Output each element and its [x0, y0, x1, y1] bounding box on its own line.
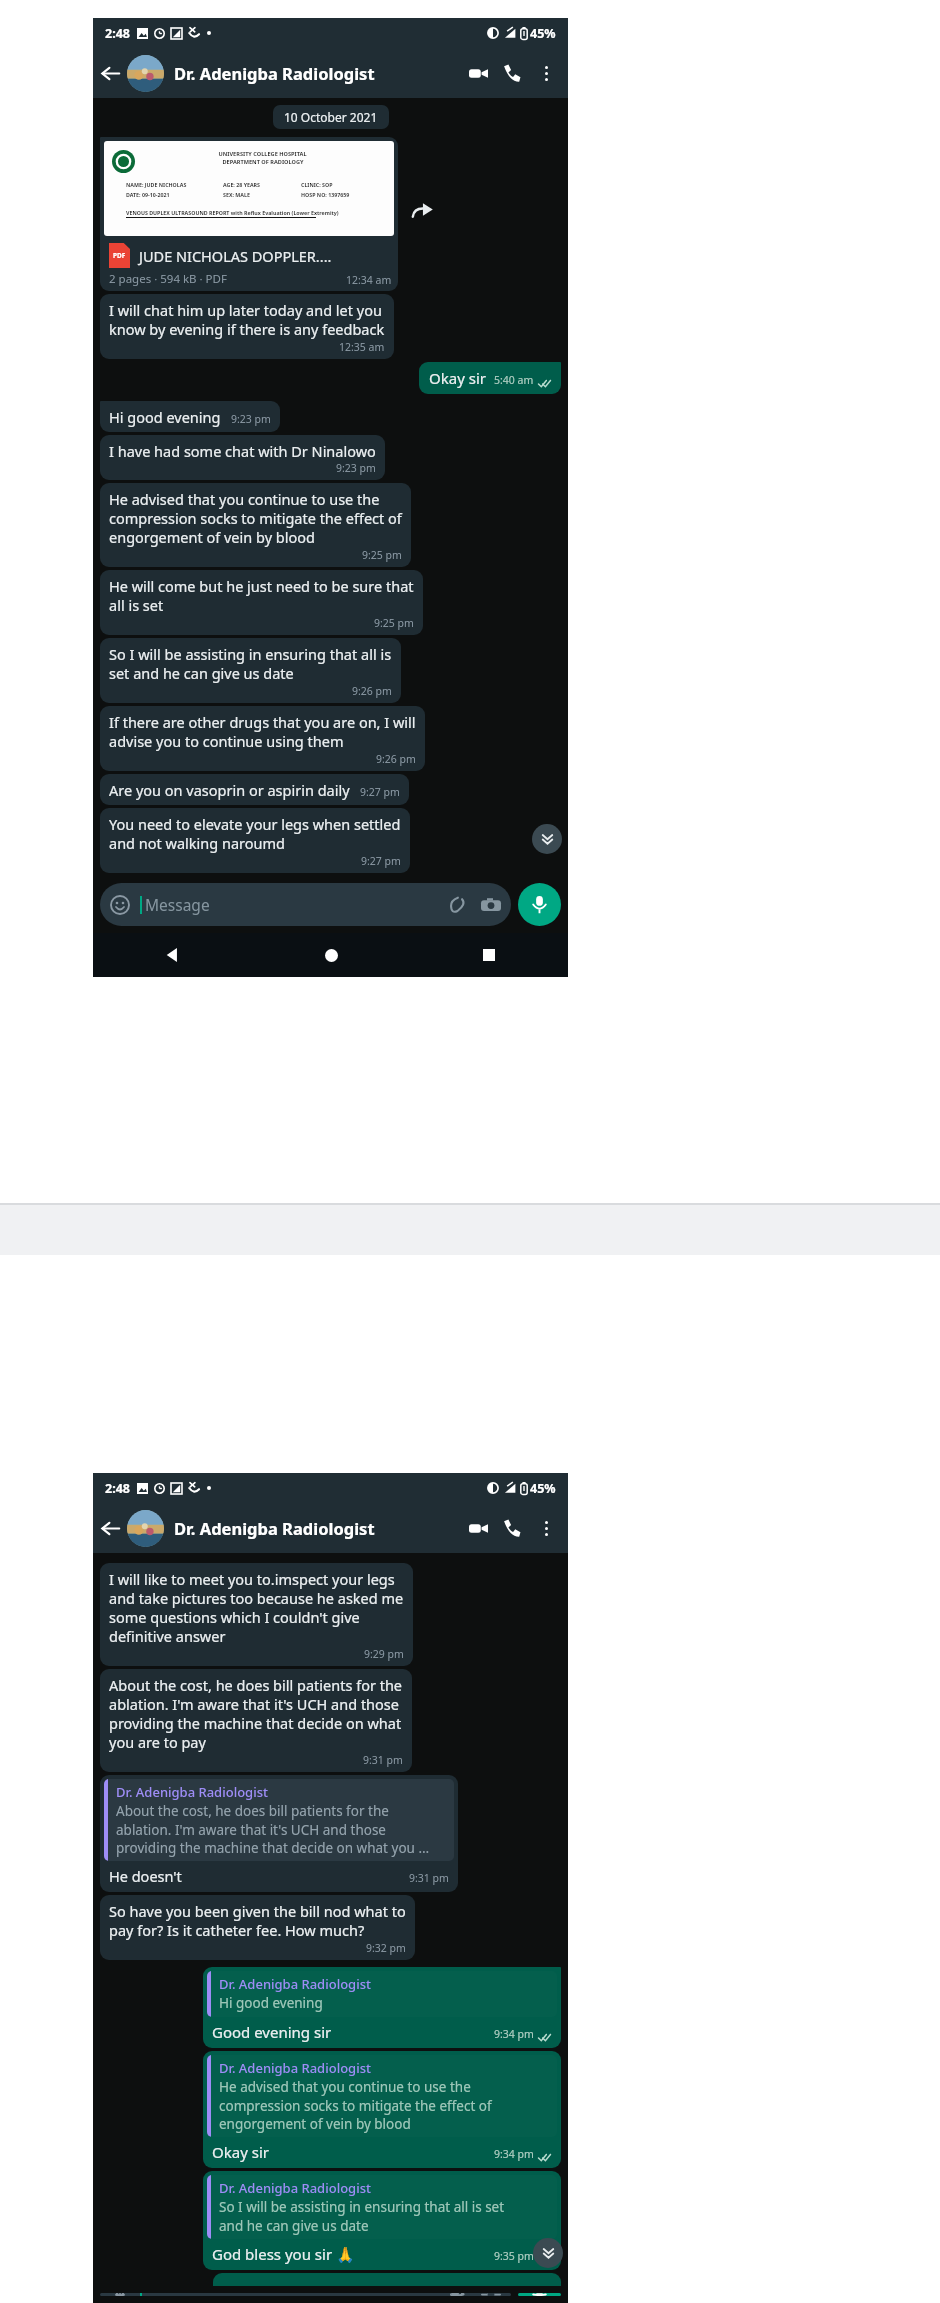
other: Camera	[481, 2293, 501, 2296]
button[interactable]: Dr. Adenigba Radiologist	[203, 2171, 561, 2270]
staticText: CLINIC: SOP	[301, 181, 333, 188]
staticText: 9:23 pm	[336, 461, 376, 475]
staticText: DEPARTMENT OF RADIOLOGY	[222, 158, 304, 166]
button[interactable]: You need to elevate your legs when settl…	[100, 808, 410, 873]
staticText: SEX: MALE	[223, 191, 250, 198]
staticText: He will come but he just need to be sure…	[109, 576, 414, 616]
staticText: 2:48	[105, 1480, 130, 1497]
staticText: UNIVERSITY COLLEGE HOSPITAL	[218, 150, 307, 158]
button[interactable]: Recent apps	[410, 933, 568, 977]
staticText: 9:25 pm	[374, 616, 414, 630]
button[interactable]: Record voice message	[518, 2293, 561, 2296]
button[interactable]: So have you been given the bill nod what…	[100, 1895, 415, 1960]
button[interactable]: Voice call	[495, 56, 529, 90]
button[interactable]: Dr. Adenigba Radiologist	[203, 1967, 561, 2048]
staticText: 5:40 am	[494, 373, 534, 387]
staticText: 9:31 pm	[363, 1753, 403, 1767]
button[interactable]: Are you on vasoprin or aspirin daily	[100, 774, 409, 805]
staticText: NAME: JUDE NICHOLAS	[126, 181, 187, 188]
staticText: DATE: 09-10-2021	[126, 191, 170, 198]
staticText: VENOUS DUPLEX ULTRASOUND REPORT with Ref…	[126, 209, 339, 216]
other: Camera	[481, 895, 501, 915]
other: Attach file	[448, 2293, 467, 2296]
button[interactable]: Dr. Adenigba Radiologist	[100, 1775, 458, 1892]
button[interactable]: I will chat him up later today and let y…	[100, 294, 394, 359]
staticText: If there are other drugs that you are on…	[109, 712, 416, 752]
staticText: 9:26 pm	[376, 752, 416, 766]
button[interactable]: Scroll to bottom	[533, 2238, 563, 2268]
staticText: JUDE NICHOLAS DOPPLER....	[139, 246, 332, 266]
staticText: Dr. Adenigba Radiologist	[219, 2059, 371, 2077]
button[interactable]: He advised that you continue to use the …	[100, 483, 411, 567]
staticText: He doesn't	[109, 1866, 182, 1886]
staticText: So I will be assisting in ensuring that …	[219, 2198, 505, 2234]
button[interactable]: Back	[93, 933, 252, 977]
staticText: So I will be assisting in ensuring that …	[109, 644, 392, 684]
staticText: About the cost, he does bill patients fo…	[109, 1675, 403, 1753]
staticText: 12:35 am	[339, 340, 385, 354]
button[interactable]: Dr. Adenigba Radiologist	[203, 2051, 561, 2168]
button[interactable]: Hi good evening	[100, 401, 280, 432]
other: Attach file	[448, 895, 467, 914]
staticText: 9:27 pm	[360, 785, 400, 799]
button[interactable]: More options	[529, 56, 563, 90]
staticText: 9:31 pm	[409, 1871, 449, 1885]
staticText: 9:32 pm	[366, 1941, 406, 1955]
button[interactable]: If there are other drugs that you are on…	[100, 706, 425, 771]
staticText: 9:34 pm	[494, 2147, 534, 2161]
button[interactable]: Back	[93, 56, 127, 90]
staticText: Hi good evening	[109, 407, 221, 427]
button[interactable]: Contact photo	[127, 1510, 164, 1547]
staticText: Dr. Adenigba Radiologist	[219, 2179, 371, 2197]
staticText: I will like to meet you to.imspect your …	[109, 1569, 404, 1647]
button[interactable]: Message	[100, 883, 511, 926]
staticText: So have you been given the bill nod what…	[109, 1901, 406, 1941]
staticText: Okay sir	[212, 2142, 269, 2162]
staticText: 12:34 am	[346, 273, 392, 287]
staticText: I have had some chat with Dr Ninalowo	[109, 441, 376, 461]
staticText: 9:29 pm	[364, 1647, 404, 1661]
button[interactable]: Video call	[461, 1511, 495, 1545]
staticText: About the cost, he does bill patients fo…	[116, 1802, 430, 1856]
button[interactable]: More options	[529, 1511, 563, 1545]
staticText: Dr. Adenigba Radiologist	[116, 1783, 268, 1801]
staticText: 2:48	[105, 25, 130, 42]
button[interactable]: Record voice message	[518, 883, 561, 926]
staticText: AGE: 28 YEARS	[223, 181, 261, 188]
staticText: I will chat him up later today and let y…	[109, 300, 385, 340]
staticText: 9:26 pm	[352, 684, 392, 698]
staticText: 45%	[530, 1480, 556, 1497]
button[interactable]: He will come but he just need to be sure…	[100, 570, 423, 635]
button[interactable]: Home	[252, 933, 410, 977]
button[interactable]: I will like to meet you to.imspect your …	[100, 1563, 413, 1666]
button[interactable]: Contact photo	[127, 55, 164, 92]
staticText: Are you on vasoprin or aspirin daily	[109, 780, 350, 800]
staticText: Hi good evening	[219, 1994, 323, 2012]
staticText: 2 pages · 594 kB · PDF	[109, 271, 227, 287]
staticText: 9:34 pm	[494, 2027, 534, 2041]
button[interactable]: Voice call	[495, 1511, 529, 1545]
staticText: 9:23 pm	[231, 412, 271, 426]
button[interactable]: Video call	[461, 56, 495, 90]
button[interactable]: Scroll to bottom	[532, 824, 562, 854]
button[interactable]: Okay sir	[419, 362, 561, 394]
button[interactable]: Back	[93, 1511, 127, 1545]
staticText: 9:35 pm	[494, 2249, 534, 2263]
button[interactable]: UNIVERSITY COLLEGE HOSPITAL	[100, 137, 398, 291]
button[interactable]: Dr. Adenigba Radiologist	[174, 1517, 461, 1539]
button[interactable]: Forward	[412, 199, 433, 220]
staticText: He advised that you continue to use the …	[109, 489, 402, 548]
button[interactable]: 10 October 2021	[273, 105, 389, 129]
button[interactable]: Message	[100, 2293, 511, 2296]
button[interactable]: I have had some chat with Dr Ninalowo	[100, 435, 385, 480]
staticText: 10 October 2021	[284, 109, 378, 125]
button[interactable]: So I will be assisting in ensuring that …	[100, 638, 401, 703]
button[interactable]: Dr. Adenigba Radiologist	[174, 62, 461, 84]
staticText: 9:25 pm	[362, 548, 402, 562]
staticText: HOSP NO: 1397659	[301, 191, 350, 198]
staticText: Message	[145, 894, 448, 915]
button[interactable]: About the cost, he does bill patients fo…	[100, 1669, 412, 1772]
staticText: Okay sir	[429, 368, 486, 388]
staticText: 9:27 pm	[361, 854, 401, 868]
